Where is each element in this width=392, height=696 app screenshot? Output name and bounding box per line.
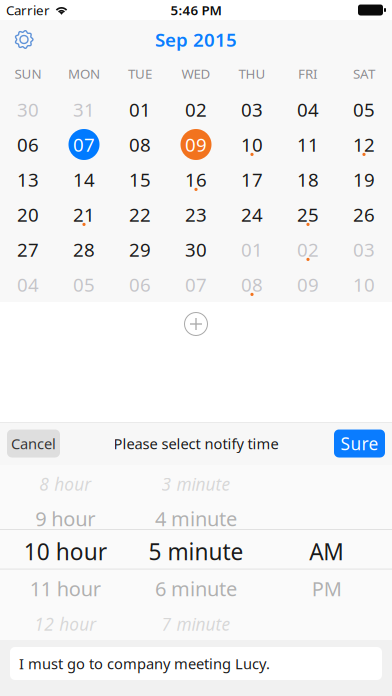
button[interactable]: 09 <box>168 127 224 162</box>
staticText: 05 <box>73 272 95 297</box>
staticText: 07 <box>185 272 207 297</box>
button[interactable]: 06 <box>0 127 56 162</box>
staticText: 18 <box>297 167 319 192</box>
button[interactable]: 26 <box>336 197 392 232</box>
button[interactable]: Add event <box>176 309 216 339</box>
staticText: 11 hour <box>30 575 101 602</box>
staticText: 27 <box>17 237 39 262</box>
staticText: 12 <box>353 132 375 157</box>
staticText: 09 <box>185 132 207 157</box>
staticText: 29 <box>129 237 151 262</box>
button[interactable]: 30 <box>0 92 56 127</box>
button[interactable]: 02 <box>168 92 224 127</box>
button[interactable]: 30 <box>168 232 224 267</box>
button[interactable]: 03 <box>224 92 280 127</box>
staticText: FRI <box>298 65 318 82</box>
button[interactable]: 18 <box>280 162 336 197</box>
button[interactable]: 14 <box>56 162 112 197</box>
button[interactable]: 27 <box>0 232 56 267</box>
button[interactable]: 01 <box>224 232 280 267</box>
staticText: SUN <box>14 65 41 82</box>
staticText: 10 <box>353 272 375 297</box>
staticText: 8 hour <box>39 472 91 495</box>
staticText: 22 <box>129 202 151 227</box>
button[interactable]: 05 <box>336 92 392 127</box>
button[interactable]: 13 <box>0 162 56 197</box>
button[interactable]: 03 <box>336 232 392 267</box>
staticText: 9 hour <box>35 505 95 532</box>
button[interactable]: Sure <box>334 429 385 457</box>
staticText: AM <box>309 536 344 566</box>
staticText: Sure <box>340 432 378 455</box>
staticText: 3 minute <box>161 472 230 495</box>
button[interactable]: 06 <box>112 267 168 302</box>
staticText: SAT <box>353 65 375 82</box>
button[interactable]: 19 <box>336 162 392 197</box>
staticText: 02 <box>185 97 207 122</box>
button[interactable]: 29 <box>112 232 168 267</box>
staticText: 21 <box>73 202 95 227</box>
staticText: 08 <box>129 132 151 157</box>
staticText: 25 <box>297 202 319 227</box>
button[interactable]: 28 <box>56 232 112 267</box>
button[interactable]: 09 <box>280 267 336 302</box>
staticText: 24 <box>241 202 263 227</box>
button[interactable]: 04 <box>280 92 336 127</box>
staticText: 5:46 PM <box>170 1 221 19</box>
staticText: 01 <box>241 237 263 262</box>
button[interactable]: 10 <box>336 267 392 302</box>
button[interactable]: 10 <box>224 127 280 162</box>
button[interactable]: 17 <box>224 162 280 197</box>
staticText: 11 <box>297 132 319 157</box>
staticText: 10 <box>241 132 263 157</box>
staticText: 30 <box>185 237 207 262</box>
staticText: TUE <box>128 65 152 82</box>
button[interactable]: Cancel <box>7 429 60 457</box>
button[interactable]: 08 <box>224 267 280 302</box>
button[interactable]: 20 <box>0 197 56 232</box>
button[interactable]: 05 <box>56 267 112 302</box>
staticText: 17 <box>241 167 263 192</box>
button[interactable]: 24 <box>224 197 280 232</box>
staticText: PM <box>312 575 342 602</box>
staticText: 12 hour <box>34 612 96 635</box>
button[interactable]: Settings <box>0 20 48 59</box>
staticText: 20 <box>17 202 39 227</box>
button[interactable]: 07 <box>56 127 112 162</box>
staticText: 09 <box>297 272 319 297</box>
staticText: 06 <box>129 272 151 297</box>
button[interactable]: 25 <box>280 197 336 232</box>
staticText: 05 <box>353 97 375 122</box>
staticText: I must go to company meeting Lucy. <box>19 654 270 673</box>
staticText: 19 <box>353 167 375 192</box>
button[interactable]: 22 <box>112 197 168 232</box>
staticText: 30 <box>17 97 39 122</box>
staticText: WED <box>181 65 210 82</box>
button[interactable]: 01 <box>112 92 168 127</box>
button[interactable]: 23 <box>168 197 224 232</box>
button[interactable]: 11 <box>280 127 336 162</box>
staticText: 31 <box>73 97 95 122</box>
staticText: 15 <box>129 167 151 192</box>
button[interactable]: 08 <box>112 127 168 162</box>
staticText: 08 <box>241 272 263 297</box>
button[interactable]: 31 <box>56 92 112 127</box>
button[interactable]: 07 <box>168 267 224 302</box>
staticText: 26 <box>353 202 375 227</box>
button[interactable]: 04 <box>0 267 56 302</box>
button[interactable]: 21 <box>56 197 112 232</box>
staticText: 04 <box>297 97 319 122</box>
staticText: Cancel <box>11 434 56 453</box>
staticText: 6 minute <box>155 575 237 602</box>
button[interactable]: 16 <box>168 162 224 197</box>
staticText: 03 <box>353 237 375 262</box>
staticText: 23 <box>185 202 207 227</box>
staticText: 02 <box>297 237 319 262</box>
button[interactable]: 02 <box>280 232 336 267</box>
staticText: 06 <box>17 132 39 157</box>
staticText: 4 minute <box>155 505 237 532</box>
button[interactable]: 15 <box>112 162 168 197</box>
staticText: Carrier <box>6 1 50 19</box>
staticText: 01 <box>129 97 151 122</box>
button[interactable]: 12 <box>336 127 392 162</box>
